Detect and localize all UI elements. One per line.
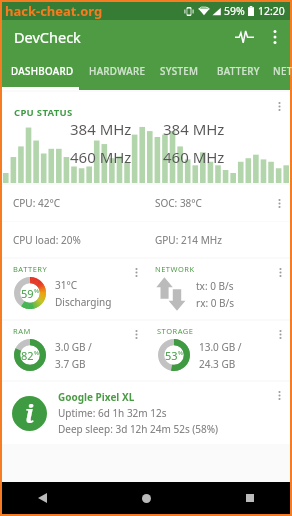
staticText: 460 MHz bbox=[70, 147, 132, 167]
button[interactable]: Back bbox=[24, 482, 60, 514]
staticText: % bbox=[34, 349, 39, 357]
staticText: Discharging bbox=[55, 295, 112, 309]
staticText: DevCheck bbox=[14, 27, 81, 47]
button[interactable]: CPU: 42°C bbox=[2, 185, 290, 221]
staticText: 12:20 bbox=[258, 4, 285, 18]
button[interactable]: NETWORK bbox=[146, 259, 290, 319]
staticText: CPU: 42°C bbox=[13, 196, 60, 210]
button[interactable]: DASHBOARD bbox=[2, 53, 83, 90]
staticText: Google Pixel XL bbox=[58, 390, 135, 404]
staticText: 3.0 GB / bbox=[55, 340, 92, 354]
button[interactable]: CPU load: 20% bbox=[2, 222, 290, 257]
staticText: BATTERY bbox=[13, 264, 48, 274]
staticText: STORAGE bbox=[157, 326, 194, 336]
button[interactable]: More options bbox=[128, 263, 144, 281]
button[interactable]: More options bbox=[271, 97, 287, 115]
button[interactable]: i bbox=[2, 382, 290, 444]
staticText: tx: 0 B/s bbox=[196, 279, 234, 293]
staticText: hack-cheat.org bbox=[5, 2, 103, 20]
staticText: CPU load: 20% bbox=[13, 233, 81, 247]
staticText: % bbox=[34, 287, 39, 295]
staticText: 59 bbox=[21, 286, 34, 301]
staticText: HARDWARE bbox=[89, 65, 146, 78]
button[interactable]: More options bbox=[128, 325, 144, 343]
staticText: 53 bbox=[165, 348, 178, 363]
staticText: 384 MHz bbox=[70, 119, 132, 139]
staticText: % bbox=[178, 349, 183, 357]
staticText: rx: 0 B/s bbox=[196, 296, 235, 310]
button[interactable]: More options bbox=[260, 22, 290, 52]
staticText: NETWORK bbox=[273, 65, 292, 78]
staticText: 384 MHz bbox=[163, 119, 225, 139]
button[interactable]: RAM bbox=[2, 321, 146, 380]
staticText: 3.7 GB bbox=[55, 357, 86, 371]
button[interactable]: More options bbox=[271, 386, 287, 404]
button[interactable]: SYSTEM bbox=[151, 53, 208, 90]
staticText: DASHBOARD bbox=[11, 65, 74, 78]
button[interactable]: Home bbox=[128, 482, 164, 514]
button[interactable]: BATTERY bbox=[2, 259, 146, 319]
staticText: SOC: 38°C bbox=[155, 196, 202, 210]
button[interactable]: More options bbox=[272, 263, 288, 281]
button[interactable]: STORAGE bbox=[146, 321, 290, 380]
staticText: RAM bbox=[13, 326, 31, 336]
staticText: 13.0 GB / bbox=[199, 340, 242, 354]
staticText: 82 bbox=[21, 348, 34, 363]
button[interactable]: CPU STATUS bbox=[2, 92, 290, 183]
staticText: Uptime: 6d 1h 32m 12s bbox=[58, 406, 167, 420]
staticText: NETWORK bbox=[155, 264, 195, 274]
staticText: CPU STATUS bbox=[14, 106, 73, 119]
staticText: 59% bbox=[224, 4, 245, 18]
staticText: 460 MHz bbox=[163, 147, 225, 167]
staticText: 24.3 GB bbox=[199, 357, 236, 371]
button[interactable]: Recent apps bbox=[232, 482, 268, 514]
button[interactable]: More options bbox=[272, 325, 288, 343]
staticText: SYSTEM bbox=[160, 65, 199, 78]
staticText: GPU: 214 MHz bbox=[155, 233, 222, 247]
button[interactable]: NETWORK bbox=[268, 53, 292, 90]
button[interactable]: HARDWARE bbox=[83, 53, 151, 90]
staticText: 31°C bbox=[55, 278, 78, 292]
staticText: BATTERY bbox=[217, 65, 260, 78]
button[interactable]: More options bbox=[271, 194, 287, 212]
button[interactable]: Monitor bbox=[228, 21, 260, 53]
staticText: Deep sleep: 3d 12h 24m 52s (58%) bbox=[58, 422, 219, 436]
staticText: i bbox=[25, 396, 34, 429]
button[interactable]: BATTERY bbox=[208, 53, 268, 90]
